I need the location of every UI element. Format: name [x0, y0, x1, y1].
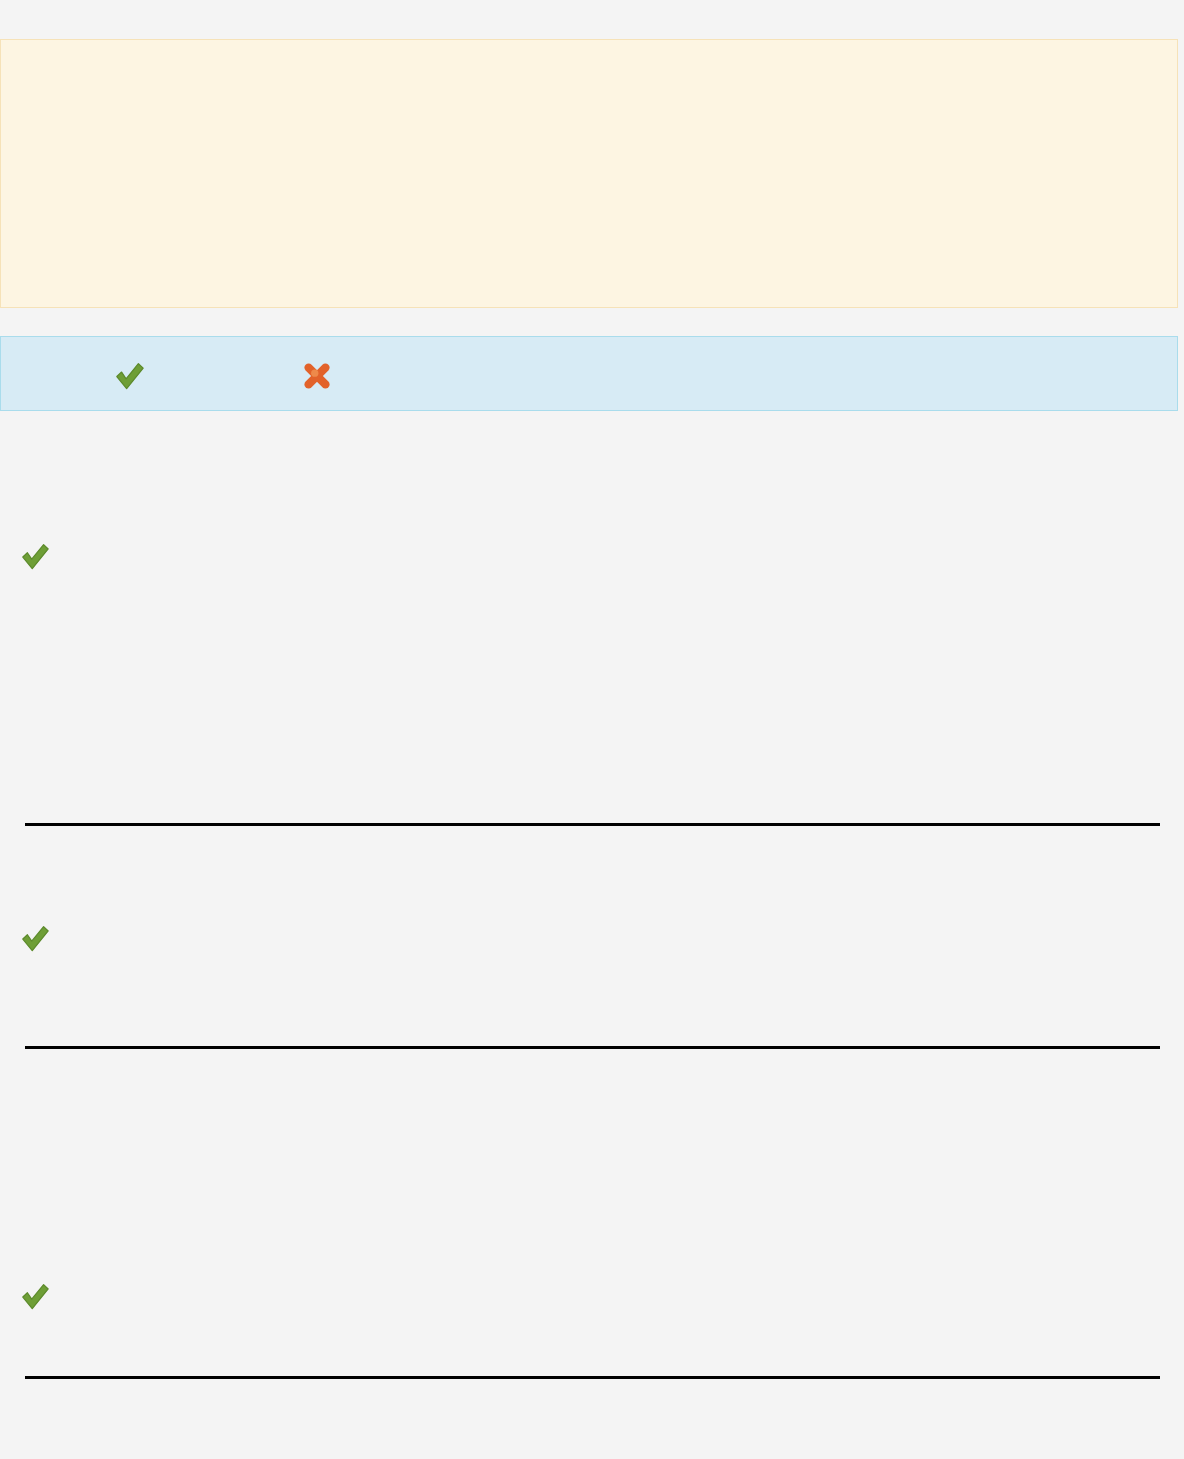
button[interactable]: Completed: [0, 1049, 1184, 1377]
button[interactable]: Completed: [0, 826, 1184, 1047]
button[interactable]: Completed: [0, 430, 1184, 824]
button[interactable]: Completed: [16, 1277, 56, 1313]
button[interactable]: Completed: [16, 919, 56, 955]
button[interactable]: Completed: [16, 537, 56, 573]
button[interactable]: Accept: [110, 356, 150, 392]
button[interactable]: [0, 39, 1178, 308]
button[interactable]: Accept: [0, 336, 1178, 411]
button[interactable]: Reject: [297, 356, 337, 392]
